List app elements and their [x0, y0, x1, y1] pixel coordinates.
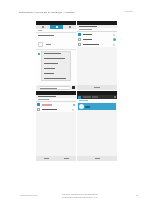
- button[interactable]: Selected tab: [50, 25, 63, 29]
- staticText: Guía SG-SST v3.1: [20, 194, 39, 197]
- button[interactable]: [41, 66, 71, 71]
- button[interactable]: [36, 102, 76, 107]
- button[interactable]: [41, 56, 71, 61]
- button[interactable]: [56, 156, 76, 161]
- button[interactable]: [36, 156, 56, 161]
- button[interactable]: Search: [38, 86, 71, 90]
- button[interactable]: [77, 42, 117, 47]
- button[interactable]: [41, 61, 71, 66]
- button[interactable]: [77, 156, 117, 161]
- button[interactable]: [77, 85, 117, 90]
- button[interactable]: [78, 103, 116, 110]
- staticText: 31: [136, 194, 139, 197]
- button[interactable]: [77, 37, 117, 42]
- button[interactable]: [36, 107, 76, 112]
- staticText: Guía de obligatorio cumplimiento: [62, 193, 99, 196]
- staticText: 1.36 Ver: [124, 10, 133, 13]
- button[interactable]: [41, 76, 71, 81]
- staticText: SEGURIDAD Y SALUD EN EL TRABAJO — Manual: [19, 10, 75, 13]
- staticText: Copyright Manual Catálogo S.A.S.: [62, 196, 98, 199]
- button[interactable]: [41, 51, 71, 56]
- button[interactable]: [41, 71, 71, 76]
- button[interactable]: [77, 32, 117, 37]
